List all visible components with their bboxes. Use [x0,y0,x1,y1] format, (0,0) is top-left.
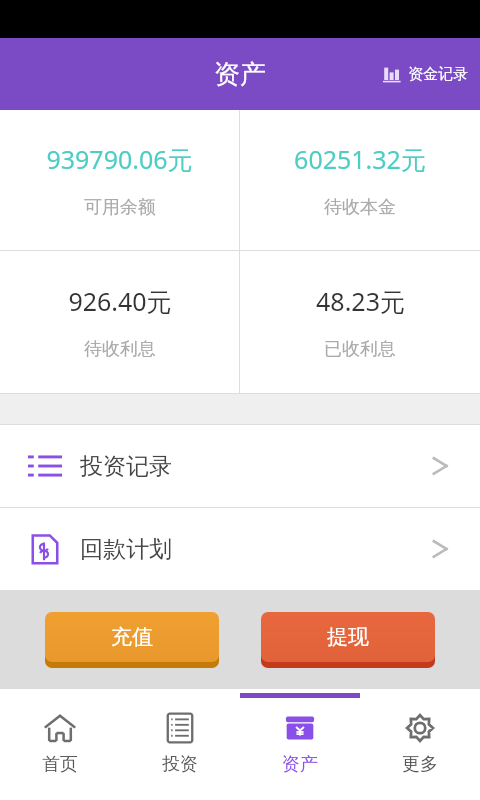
other: 投资 [162,710,198,746]
staticText: 回款计划 [80,535,172,564]
button[interactable]: 资产 [240,698,360,800]
staticText: 待收利息 [84,338,156,361]
staticText: 充值 [111,624,153,650]
staticText: 48.23元 [316,284,405,318]
staticText: 60251.32元 [294,142,426,176]
staticText: 待收本金 [324,196,396,219]
staticText: 投资 [162,753,198,776]
staticText: 提现 [327,624,369,650]
other: 资产 [282,710,318,746]
button[interactable]: 939790.06元 [0,110,239,250]
staticText: 939790.06元 [46,142,193,176]
staticText: 投资记录 [80,452,172,481]
other: 更多 [402,710,438,746]
staticText: 已收利息 [324,338,396,361]
button[interactable]: 提现 [261,612,435,668]
button[interactable]: 更多 [360,698,480,800]
staticText: 926.40元 [68,284,172,318]
staticText: 资产 [282,753,318,776]
button[interactable]: 资金记录 [379,56,472,92]
button[interactable]: 充值 [45,612,219,668]
other: 首页 [42,710,78,746]
button[interactable]: 投资 [120,698,240,800]
staticText: 首页 [42,753,78,776]
staticText: 更多 [402,753,438,776]
button[interactable]: 投资记录 [0,425,480,507]
button[interactable]: 回款计划 [0,508,480,590]
button[interactable]: 首页 [0,698,120,800]
button[interactable]: 60251.32元 [240,110,480,250]
staticText: 资产 [214,58,266,91]
staticText: 资金记录 [408,65,468,84]
button[interactable]: 48.23元 [240,251,480,393]
staticText: 可用余额 [84,196,156,219]
button[interactable]: 926.40元 [0,251,239,393]
